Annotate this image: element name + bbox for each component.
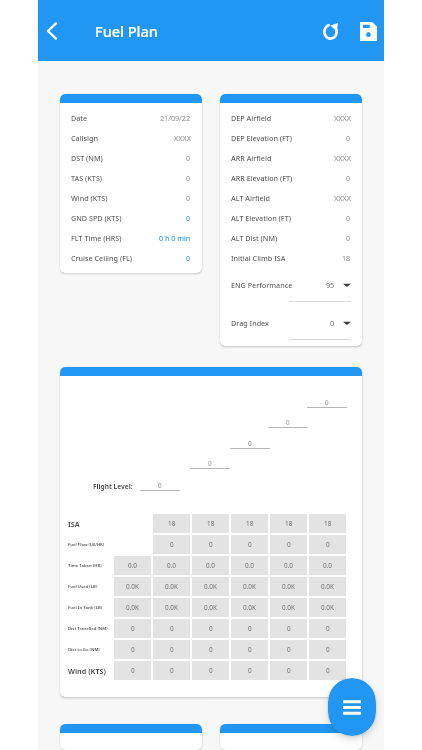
staticText: XXXX	[334, 153, 351, 163]
button[interactable]: 0.0	[153, 556, 190, 575]
button[interactable]: 18	[309, 514, 346, 533]
button[interactable]: DEP Elevation (FT)	[231, 128, 351, 148]
button[interactable]: 0.0K	[231, 577, 268, 596]
staticText: 21/09/22	[160, 113, 191, 123]
staticText: 0.0K	[204, 582, 217, 591]
button[interactable]: 0	[153, 640, 190, 659]
button[interactable]: 0	[153, 661, 190, 680]
button[interactable]: 0.0K	[153, 577, 190, 596]
button[interactable]: Initial Climb ISA	[231, 248, 351, 268]
button[interactable]: 0	[309, 661, 346, 680]
staticText: 0	[248, 624, 252, 633]
button[interactable]: 0.0K	[192, 598, 229, 617]
staticText: 0	[170, 624, 174, 633]
staticText: 0.0K	[282, 582, 295, 591]
staticText: 18	[168, 519, 176, 528]
button[interactable]: 18	[192, 514, 229, 533]
button[interactable]: 0	[114, 661, 151, 680]
button[interactable]: 0.0	[231, 556, 268, 575]
button[interactable]: 0.0	[309, 556, 346, 575]
button[interactable]: 0.0K	[270, 598, 307, 617]
button[interactable]: 0	[270, 640, 307, 659]
staticText: DST (NM)	[71, 153, 103, 163]
button[interactable]: Date	[71, 108, 191, 128]
button[interactable]: 0.0K	[114, 577, 151, 596]
button[interactable]: 0	[192, 640, 229, 659]
staticText: ARR Elevation (FT)	[231, 173, 293, 183]
staticText: XXXX	[334, 193, 351, 203]
staticText: ENG Performance	[231, 280, 293, 290]
button[interactable]: 0.0K	[270, 577, 307, 596]
button[interactable]: 0	[231, 619, 268, 638]
button[interactable]: 0.0K	[192, 577, 229, 596]
staticText: 0.0K	[165, 582, 178, 591]
button[interactable]: Back	[38, 17, 66, 45]
button[interactable]: 0	[268, 418, 308, 428]
button[interactable]: 0	[307, 398, 347, 408]
button[interactable]: 0	[114, 640, 151, 659]
staticText: ALT Dist (NM)	[231, 233, 278, 243]
button[interactable]: TAS (KTS)	[71, 168, 191, 188]
button[interactable]: 0.0	[114, 556, 151, 575]
button[interactable]: 18	[231, 514, 268, 533]
button[interactable]: Refresh	[315, 16, 345, 46]
button[interactable]: 0	[270, 661, 307, 680]
button[interactable]: 0	[309, 619, 346, 638]
staticText: 18	[246, 519, 254, 528]
staticText: DEP Airfield	[231, 113, 272, 123]
button[interactable]: Callsign	[71, 128, 191, 148]
staticText: ALT Elevation (FT)	[231, 213, 291, 223]
button[interactable]: 0.0K	[309, 577, 346, 596]
button[interactable]: DST (NM)	[71, 148, 191, 168]
button[interactable]: ALT Airfield	[231, 188, 351, 208]
button[interactable]: 0	[231, 640, 268, 659]
staticText: 0	[248, 645, 252, 654]
button[interactable]: 0	[230, 439, 270, 449]
button[interactable]: 0	[190, 459, 230, 469]
staticText: 18	[207, 519, 215, 528]
staticText: 0	[286, 418, 290, 427]
button[interactable]: GND SPD (KTS)	[71, 208, 191, 228]
staticText: 0	[209, 666, 213, 675]
button[interactable]: Wind (KTS)	[71, 188, 191, 208]
staticText: Flight Level:	[93, 482, 133, 491]
button[interactable]: 0	[231, 661, 268, 680]
button[interactable]: Save	[353, 16, 383, 46]
staticText: 0	[186, 153, 191, 163]
button[interactable]: 0.0K	[153, 598, 190, 617]
button[interactable]: ENG Performance	[231, 274, 351, 296]
button[interactable]: 0	[192, 535, 229, 554]
staticText: 18	[285, 519, 293, 528]
button[interactable]: 0	[140, 481, 180, 491]
button[interactable]: ALT Elevation (FT)	[231, 208, 351, 228]
button[interactable]: Cruise Ceiling (FL)	[71, 248, 191, 268]
button[interactable]: 0	[114, 619, 151, 638]
staticText: 0	[287, 645, 291, 654]
button[interactable]: 0	[153, 535, 190, 554]
button[interactable]: 0.0K	[114, 598, 151, 617]
button[interactable]: 0.0	[270, 556, 307, 575]
button[interactable]: 0.0K	[231, 598, 268, 617]
button[interactable]: ARR Elevation (FT)	[231, 168, 351, 188]
button[interactable]: 0	[270, 619, 307, 638]
staticText: GND SPD (KTS)	[71, 213, 122, 223]
button[interactable]: 0	[309, 535, 346, 554]
button[interactable]: Menu	[328, 678, 376, 736]
button[interactable]: 0.0K	[309, 598, 346, 617]
button[interactable]: 0	[192, 661, 229, 680]
button[interactable]: ARR Airfield	[231, 148, 351, 168]
button[interactable]: 18	[153, 514, 190, 533]
staticText: TAS (KTS)	[71, 173, 103, 183]
button[interactable]: 0	[153, 619, 190, 638]
button[interactable]: 0	[192, 619, 229, 638]
button[interactable]: DEP Airfield	[231, 108, 351, 128]
button[interactable]: 0	[270, 535, 307, 554]
button[interactable]: 0.0	[192, 556, 229, 575]
button[interactable]: FLT Time (HRS)	[71, 228, 191, 248]
button[interactable]: 0	[309, 640, 346, 659]
button[interactable]: 0	[231, 535, 268, 554]
staticText: 0.0K	[243, 582, 256, 591]
button[interactable]: ALT Dist (NM)	[231, 228, 351, 248]
button[interactable]: Drag Index	[231, 312, 351, 334]
button[interactable]: 18	[270, 514, 307, 533]
